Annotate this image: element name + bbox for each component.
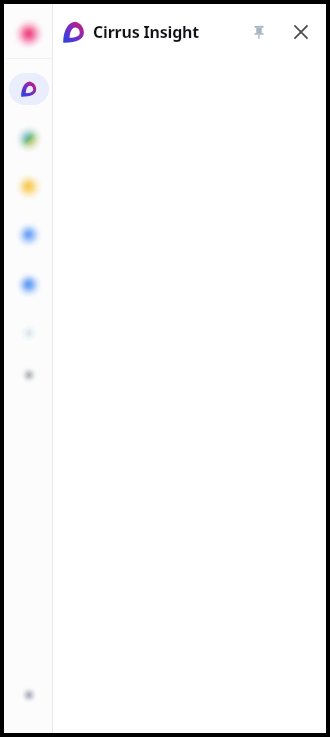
button[interactable]: Pin panel (244, 17, 274, 47)
button[interactable]: Calendar (4, 119, 53, 159)
button[interactable]: Add-ons (4, 355, 53, 395)
button[interactable]: Mail (4, 14, 53, 54)
button[interactable]: Tasks (4, 215, 53, 255)
staticText: Cirrus Insight (93, 21, 200, 43)
button[interactable]: Cirrus Insight (63, 17, 200, 47)
button[interactable]: Settings (4, 675, 53, 715)
button[interactable]: Close (286, 17, 316, 47)
button[interactable]: Notes (4, 167, 53, 207)
button[interactable]: Contacts (4, 265, 53, 305)
button[interactable]: More apps (4, 313, 53, 353)
button[interactable]: Cirrus Insight (4, 69, 53, 109)
